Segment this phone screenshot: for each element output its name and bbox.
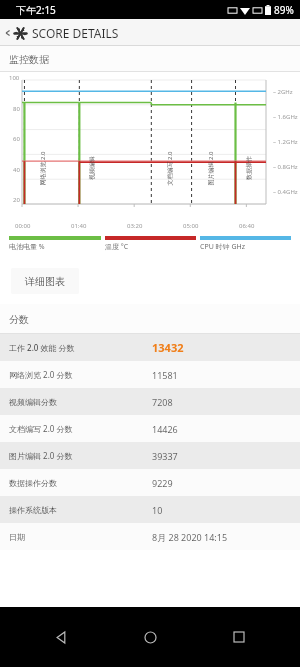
staticText: 网络浏览 2.0 分数 [9,369,73,380]
button[interactable]: 数据操作分数 [0,469,300,496]
button[interactable]: 工作 2.0 效能 分数 [0,334,300,361]
staticText: 数据操作 [245,156,253,180]
staticText: 39337 [152,450,178,462]
staticText: 7208 [152,396,173,408]
staticText: 40 [13,166,20,174]
staticText: CPU 时钟 GHz [200,242,245,252]
button[interactable]: 日期 [0,523,300,550]
button[interactable]: 网络浏览 2.0 分数 [0,361,300,388]
staticText: 视频编辑 [88,156,96,180]
staticText: 60 [13,135,20,143]
button[interactable]: 操作系统版本 [0,496,300,523]
button[interactable]: 文档编写 2.0 分数 [0,415,300,442]
staticText: – 1.6GHz [273,113,298,121]
staticText: 视频编辑分数 [9,397,57,407]
staticText: 9229 [152,477,173,489]
staticText: 数据操作分数 [9,478,57,488]
button[interactable]: 图片编辑 2.0 分数 [0,442,300,469]
staticText: 20 [13,196,20,204]
staticText: 电池电量 % [9,242,45,252]
staticText: SCORE DETAILS [32,25,119,41]
staticText: 03:20 [127,222,143,230]
staticText: 网络浏览 2.0 [38,150,46,185]
staticText: 06:40 [239,222,255,230]
staticText: 01:40 [71,222,87,230]
staticText: 工作 2.0 效能 分数 [9,342,75,353]
staticText: 日期 [9,532,25,542]
staticText: 8月 28 2020 14:15 [152,531,228,543]
staticText: 100 [9,74,20,82]
staticText: 80 [13,105,20,113]
button[interactable]: 视频编辑分数 [0,388,300,415]
staticText: – 1.2GHz [273,138,298,146]
staticText: 图片编辑 2.0 分数 [9,450,73,461]
button[interactable]: Back [46,622,76,652]
staticText: – 0.4GHz [273,188,298,196]
staticText: – 2GHz [273,88,293,96]
button[interactable]: Back [4,25,119,41]
button[interactable]: Home [135,622,165,652]
button[interactable]: 详细图表 [11,268,79,294]
staticText: 文档编写 2.0 [165,150,173,185]
staticText: 11581 [152,369,178,381]
staticText: 详细图表 [25,275,65,288]
staticText: 操作系统版本 [9,505,57,515]
staticText: 89% [274,3,294,17]
staticText: 14426 [152,423,178,435]
staticText: 13432 [152,340,184,355]
staticText: 下午2:15 [16,3,56,17]
staticText: 00:00 [15,222,31,230]
staticText: 文档编写 2.0 分数 [9,423,73,434]
staticText: 05:00 [183,222,199,230]
staticText: 图片编辑 2.0 [206,150,214,185]
button[interactable]: Recent apps [224,622,254,652]
staticText: 监控数据 [9,53,49,66]
staticText: 温度 °C [105,242,129,252]
staticText: 分数 [9,313,29,326]
staticText: 10 [152,504,163,516]
staticText: – 0.8GHz [273,163,298,171]
